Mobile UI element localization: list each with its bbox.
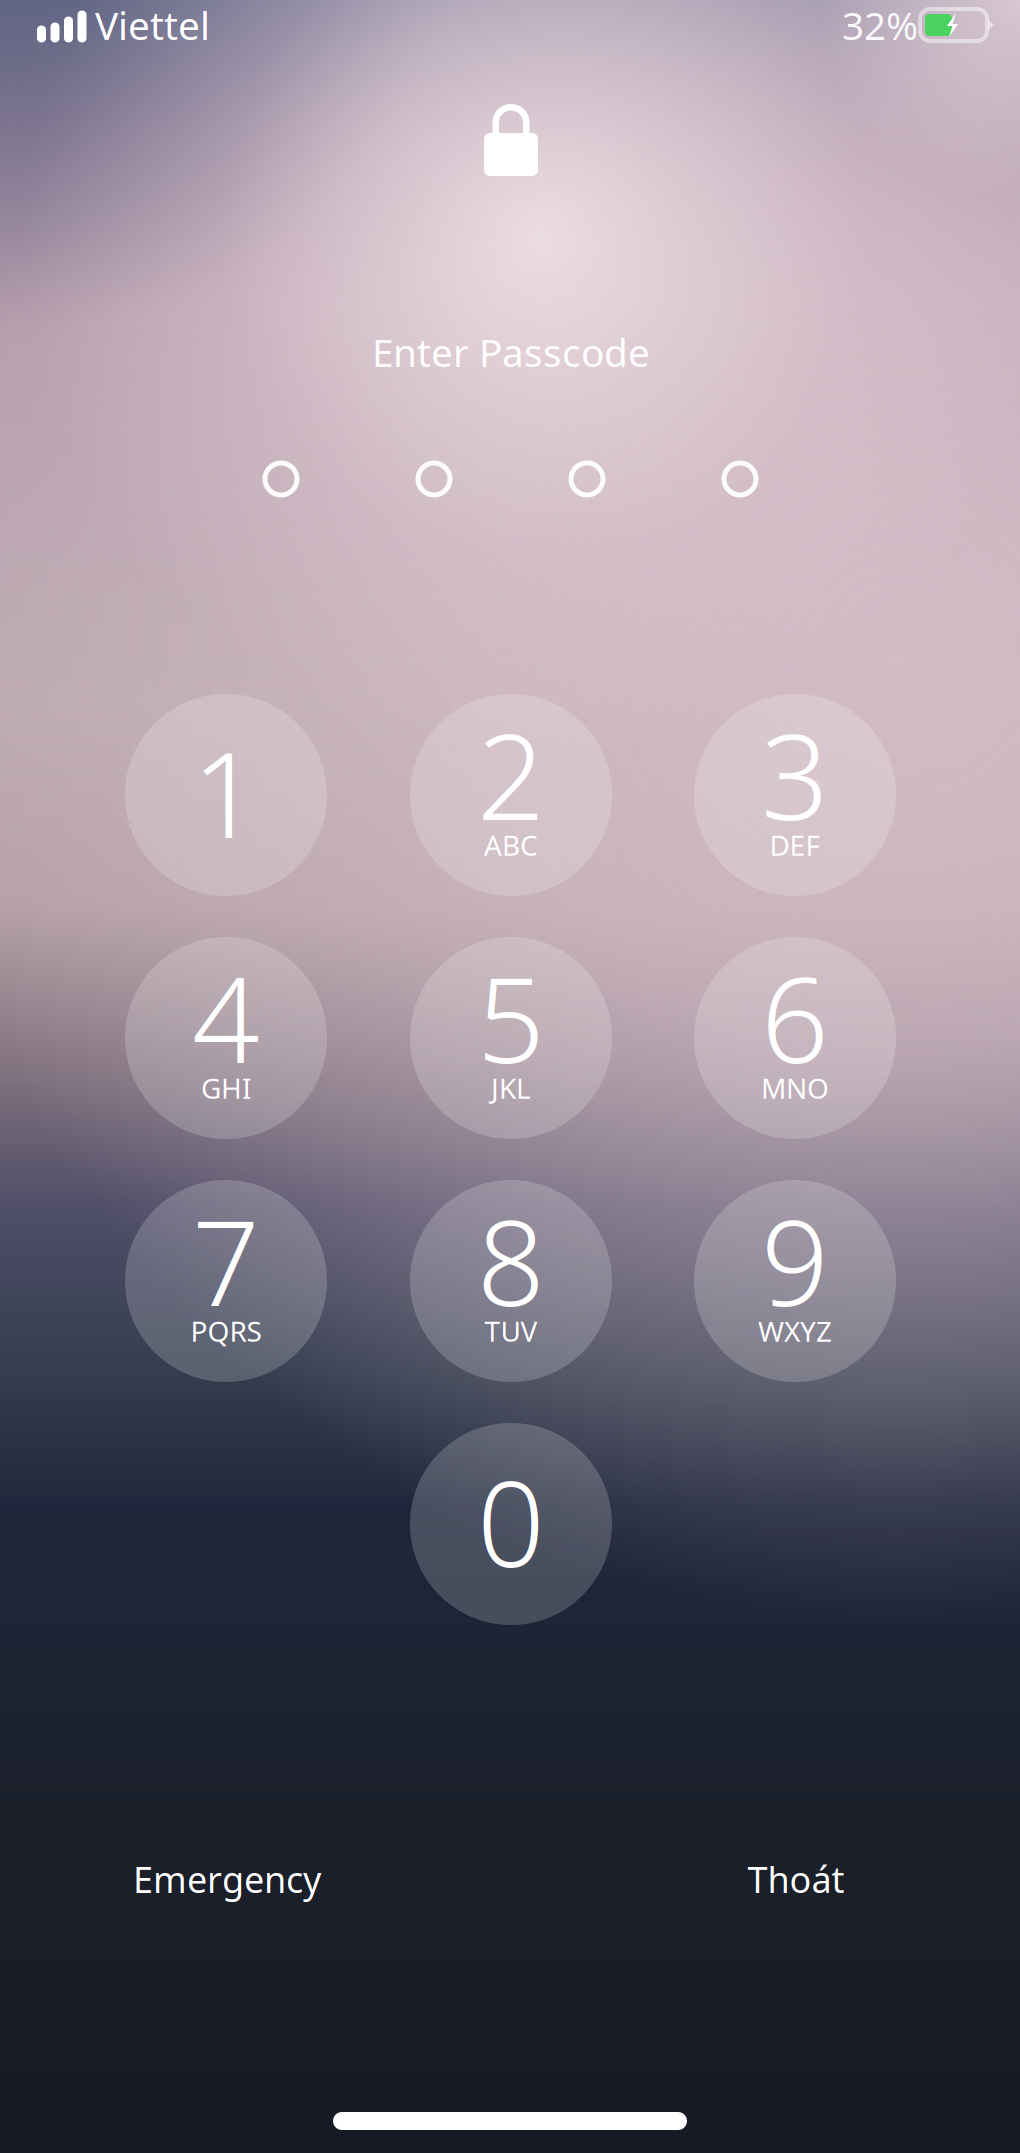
staticText: Thoát (747, 1855, 844, 1903)
button[interactable]: 4 (125, 937, 327, 1139)
staticText: Emergency (133, 1855, 321, 1903)
staticText: Enter Passcode (372, 326, 650, 378)
staticText: 2 (477, 695, 545, 853)
button[interactable]: Emergency (115, 1841, 339, 1917)
button[interactable]: 5 (410, 937, 612, 1139)
button[interactable]: Thoát (729, 1841, 862, 1917)
button[interactable]: 0 (410, 1423, 612, 1625)
staticText: 1 (192, 713, 260, 871)
staticText: ABC (484, 826, 538, 864)
staticText: 0 (477, 1442, 545, 1600)
button[interactable]: 1 (125, 694, 327, 896)
button[interactable]: 8 (410, 1180, 612, 1382)
staticText: 3 (761, 695, 829, 853)
staticText: 32% (842, 0, 918, 51)
button[interactable]: 3 (694, 694, 896, 896)
staticText: 9 (761, 1181, 829, 1339)
staticText: Viettel (95, 0, 210, 51)
staticText: DEF (769, 826, 820, 864)
button[interactable]: 2 (410, 694, 612, 896)
staticText: 5 (477, 938, 545, 1096)
staticText: 7 (192, 1181, 260, 1339)
staticText: 6 (761, 938, 829, 1096)
staticText: TUV (484, 1312, 537, 1350)
staticText: JKL (491, 1069, 531, 1107)
button[interactable]: 9 (694, 1180, 896, 1382)
staticText: WXYZ (758, 1312, 832, 1350)
button[interactable]: 7 (125, 1180, 327, 1382)
staticText: MNO (761, 1069, 829, 1107)
staticText: 4 (192, 938, 260, 1096)
staticText: 8 (477, 1181, 545, 1339)
staticText: PQRS (190, 1312, 261, 1350)
staticText: GHI (201, 1069, 251, 1107)
button[interactable]: 6 (694, 937, 896, 1139)
